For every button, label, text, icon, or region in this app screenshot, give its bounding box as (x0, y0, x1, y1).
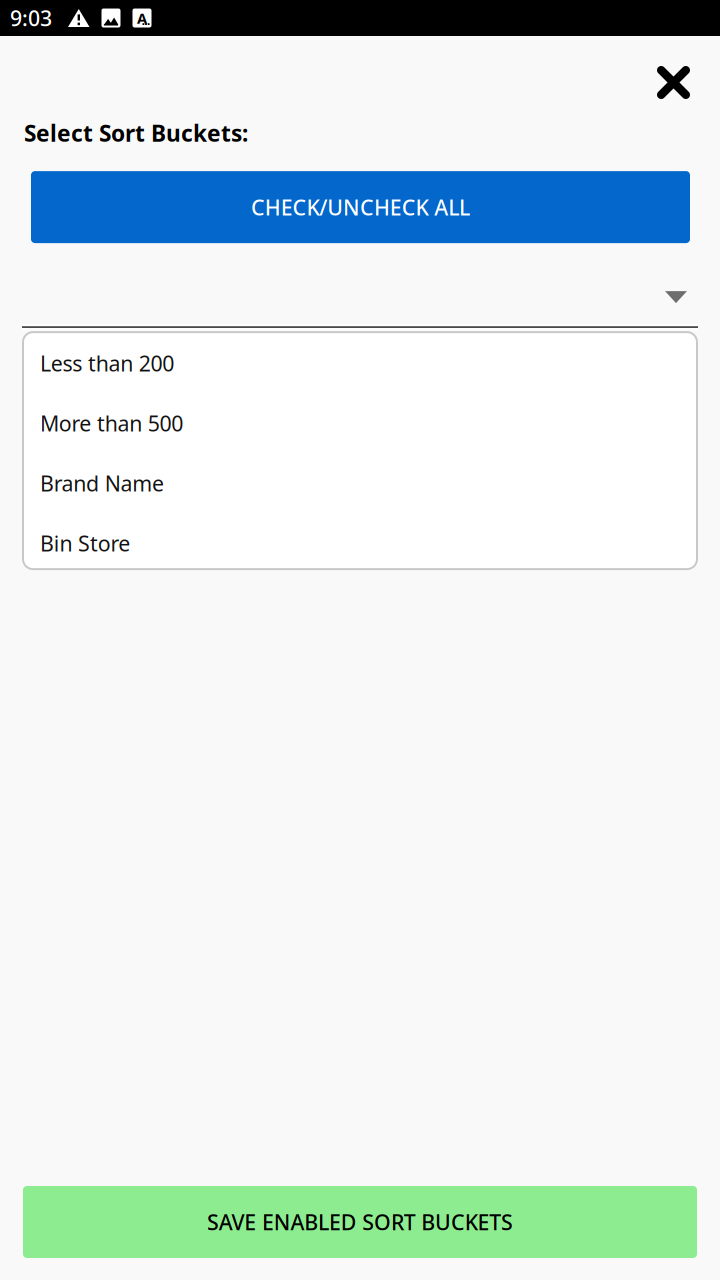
button[interactable]: Bin Store (23, 513, 697, 573)
button[interactable]: Less than 200 (23, 333, 697, 393)
staticText: Brand Name (40, 469, 164, 497)
staticText: Bin Store (40, 529, 130, 557)
button[interactable]: More than 500 (23, 393, 697, 453)
staticText: More than 500 (40, 409, 183, 437)
staticText: Select Sort Buckets: (24, 118, 248, 148)
button[interactable]: Brand Name (23, 453, 697, 513)
button[interactable]: SAVE ENABLED SORT BUCKETS (23, 1186, 697, 1258)
staticText: A (137, 8, 147, 28)
button[interactable]: Close (657, 36, 720, 99)
staticText: Less than 200 (40, 349, 174, 377)
staticText: 9:03 (10, 4, 52, 32)
button[interactable]: CHECK/UNCHECK ALL (31, 171, 690, 243)
staticText: SAVE ENABLED SORT BUCKETS (207, 1208, 513, 1236)
staticText: CHECK/UNCHECK ALL (251, 193, 470, 221)
